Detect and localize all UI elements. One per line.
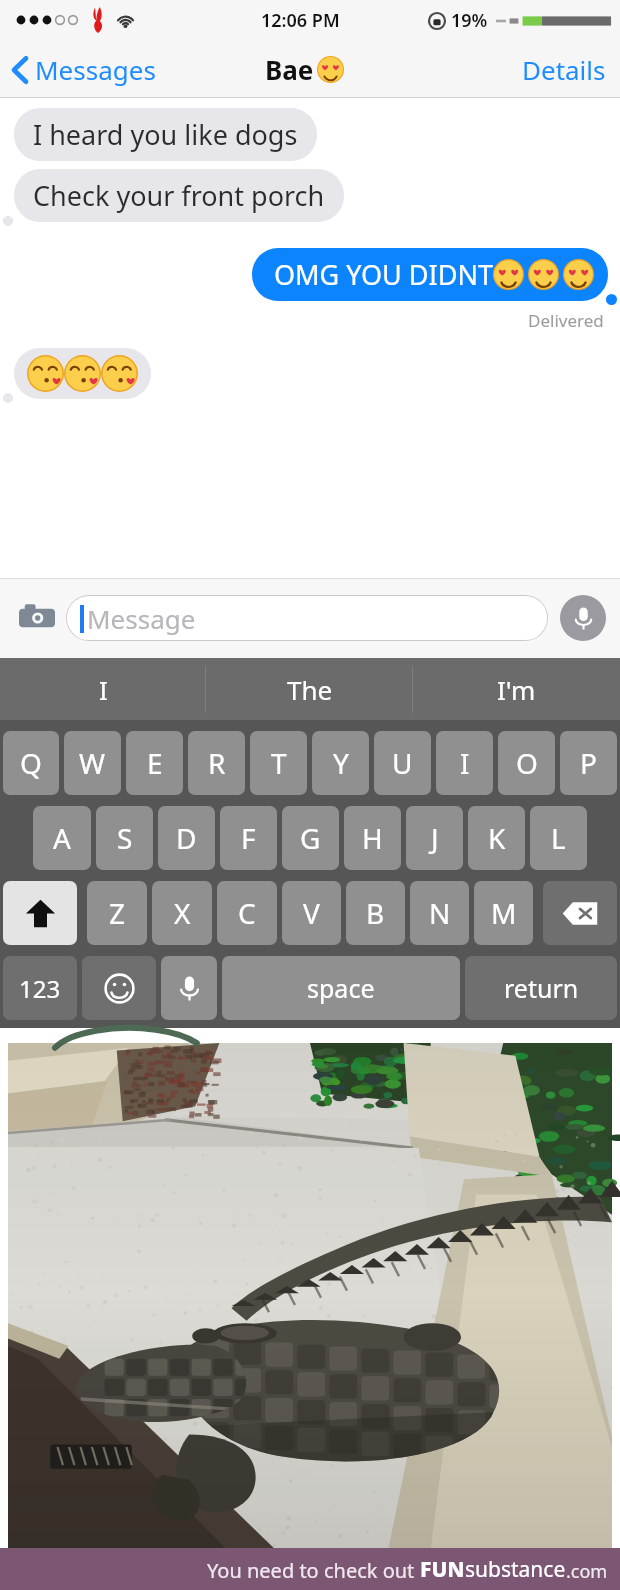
staticText: space	[307, 971, 375, 1005]
button[interactable]: V	[282, 881, 341, 945]
staticText: W	[79, 744, 106, 782]
staticText: A	[53, 819, 71, 857]
button[interactable]: Z	[87, 881, 147, 945]
button[interactable]: R	[188, 731, 245, 795]
button[interactable]: I	[436, 731, 493, 795]
button[interactable]: E	[126, 731, 183, 795]
staticText: I heard you like dogs	[33, 116, 298, 153]
button[interactable]: Message	[66, 595, 548, 641]
staticText: B	[366, 894, 385, 932]
button[interactable]: I'm	[413, 658, 620, 720]
button[interactable]: X	[152, 881, 212, 945]
staticText: You need to check out	[207, 1557, 420, 1584]
staticText: S	[117, 819, 133, 857]
staticText: The	[287, 672, 333, 707]
staticText: Details	[522, 52, 606, 87]
staticText: L	[551, 819, 566, 857]
button[interactable]: return	[465, 956, 617, 1020]
button[interactable]: I	[0, 658, 206, 720]
staticText: Delivered	[528, 309, 604, 332]
staticText: I	[460, 744, 470, 782]
staticText: I	[99, 672, 108, 707]
button[interactable]: H	[344, 806, 401, 870]
button[interactable]: Check your front porch	[14, 169, 344, 222]
staticText: C	[238, 894, 256, 932]
button[interactable]: J	[406, 806, 463, 870]
staticText: V	[303, 894, 320, 932]
button[interactable]: OMG YOU DIDNT	[252, 248, 608, 301]
button[interactable]: Camera	[14, 595, 60, 641]
staticText: Q	[20, 744, 42, 782]
button[interactable]: K	[468, 806, 525, 870]
staticText: 123	[19, 972, 61, 1005]
staticText: I'm	[497, 672, 536, 707]
staticText: 19%	[451, 8, 488, 33]
staticText: U	[392, 744, 413, 782]
button[interactable]: The	[206, 658, 413, 720]
button[interactable]: S	[96, 806, 153, 870]
button[interactable]: A	[33, 806, 91, 870]
staticText: H	[362, 819, 383, 857]
staticText: K	[488, 819, 506, 857]
button[interactable]: Voice message	[560, 595, 606, 641]
staticText: .com	[566, 1559, 608, 1584]
button[interactable]: I heard you like dogs	[14, 108, 317, 161]
button[interactable]: B	[346, 881, 405, 945]
staticText: Check your front porch	[33, 177, 325, 214]
staticText: substance	[465, 1555, 566, 1584]
button[interactable]: Shift	[3, 881, 77, 945]
button[interactable]: U	[374, 731, 431, 795]
button[interactable]: Messages	[0, 44, 168, 95]
staticText: R	[208, 744, 226, 782]
staticText: FUN	[420, 1555, 465, 1584]
button[interactable]	[14, 348, 151, 399]
staticText: 12:06 PM	[261, 8, 340, 33]
staticText: T	[271, 744, 287, 782]
button[interactable]: N	[410, 881, 469, 945]
staticText: D	[176, 819, 197, 857]
button[interactable]: W	[64, 731, 121, 795]
staticText: M	[491, 894, 517, 932]
staticText: OMG YOU DIDNT	[274, 256, 493, 293]
staticText: Bae	[265, 52, 314, 87]
button[interactable]: Dictation	[161, 956, 217, 1020]
staticText: Message	[87, 601, 196, 636]
staticText: F	[241, 819, 256, 857]
button[interactable]: G	[282, 806, 339, 870]
button[interactable]: Emoji keyboard	[82, 956, 156, 1020]
button[interactable]: L	[530, 806, 587, 870]
staticText: Z	[109, 894, 126, 932]
staticText: Y	[333, 744, 349, 782]
staticText: E	[147, 744, 163, 782]
button[interactable]: space	[222, 956, 460, 1020]
button[interactable]: Details	[508, 42, 620, 97]
staticText: Messages	[35, 52, 156, 87]
button[interactable]: Y	[312, 731, 369, 795]
staticText: N	[429, 894, 451, 932]
button[interactable]: Backspace	[543, 881, 617, 945]
staticText: X	[174, 894, 191, 932]
button[interactable]: F	[220, 806, 277, 870]
button[interactable]: M	[474, 881, 533, 945]
button[interactable]: Q	[3, 731, 59, 795]
staticText: P	[580, 744, 597, 782]
staticText: G	[300, 819, 321, 857]
staticText: O	[516, 744, 538, 782]
button[interactable]: P	[560, 731, 617, 795]
button[interactable]: T	[250, 731, 307, 795]
button[interactable]: O	[498, 731, 555, 795]
staticText: return	[504, 971, 579, 1005]
button[interactable]: D	[158, 806, 215, 870]
button[interactable]: C	[217, 881, 277, 945]
staticText: J	[431, 819, 439, 857]
button[interactable]: 123	[3, 956, 77, 1020]
